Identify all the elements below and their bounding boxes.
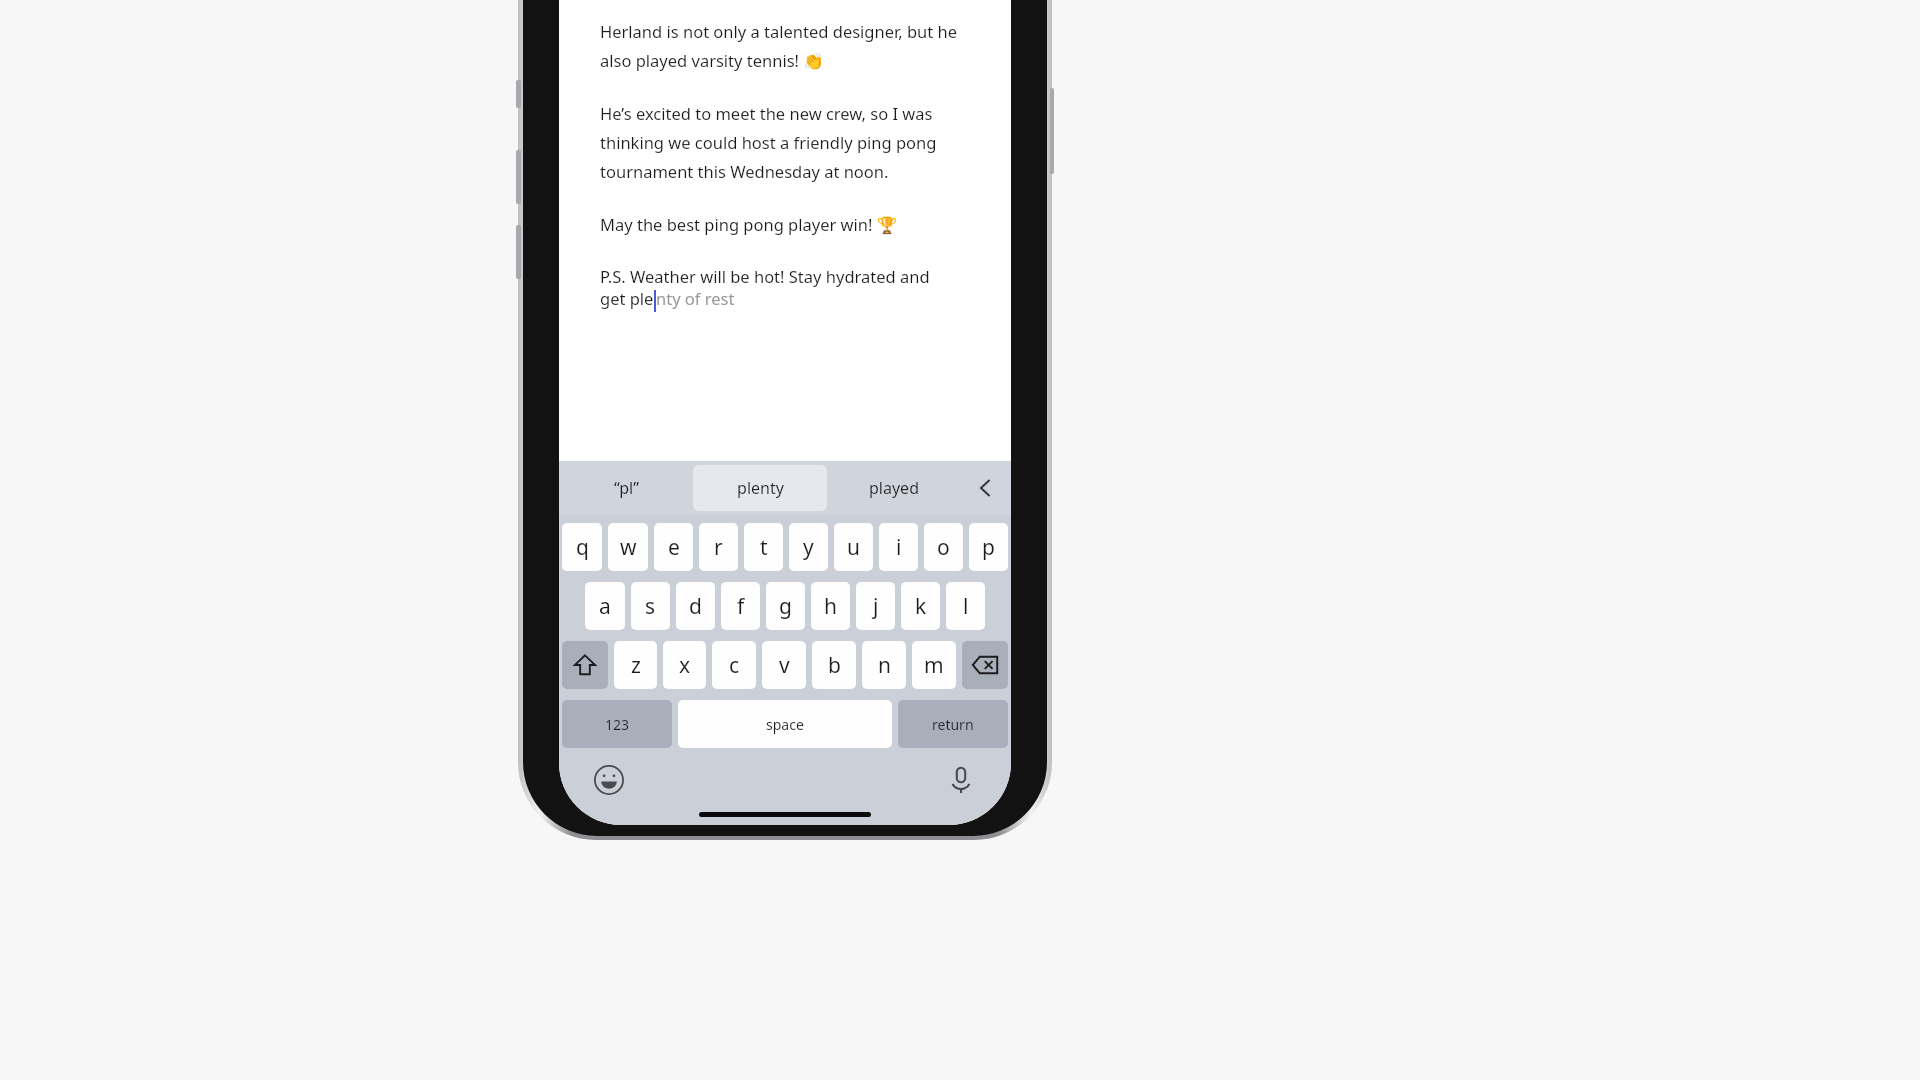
button[interactable]: played: [827, 461, 961, 515]
button[interactable]: i: [879, 523, 918, 571]
button[interactable]: z: [614, 641, 657, 689]
button[interactable]: Delete: [962, 641, 1008, 689]
staticText: v: [779, 651, 790, 680]
staticText: x: [679, 651, 691, 680]
staticText: q: [576, 533, 589, 562]
button[interactable]: o: [924, 523, 963, 571]
staticText: s: [645, 592, 656, 621]
staticText: w: [620, 533, 637, 562]
button[interactable]: r: [699, 523, 738, 571]
button[interactable]: x: [663, 641, 706, 689]
staticText: u: [847, 533, 860, 562]
staticText: l: [963, 592, 969, 621]
button[interactable]: s: [631, 582, 670, 630]
staticText: g: [779, 592, 792, 621]
staticText: nty of rest: [656, 287, 735, 309]
button[interactable]: Shift: [562, 641, 608, 689]
staticText: m: [924, 651, 944, 680]
staticText: 123: [605, 715, 630, 734]
button[interactable]: p: [969, 523, 1008, 571]
staticText: a: [599, 592, 611, 621]
staticText: He’s excited to meet the new crew, so I …: [600, 102, 937, 183]
button[interactable]: l: [946, 582, 985, 630]
button[interactable]: v: [762, 641, 806, 689]
button[interactable]: b: [812, 641, 856, 689]
button[interactable]: t: [744, 523, 783, 571]
button[interactable]: return: [898, 700, 1008, 748]
button[interactable]: n: [862, 641, 906, 689]
staticText: p: [982, 533, 995, 562]
staticText: get ple: [600, 287, 654, 309]
button[interactable]: plenty: [693, 465, 827, 511]
staticText: r: [714, 533, 723, 562]
staticText: h: [824, 592, 837, 621]
button[interactable]: Emoji keyboard: [587, 758, 631, 802]
staticText: played: [869, 477, 919, 499]
staticText: i: [896, 533, 902, 562]
button[interactable]: a: [585, 582, 625, 630]
other: Delete: [972, 652, 998, 678]
button[interactable]: j: [856, 582, 895, 630]
staticText: n: [878, 651, 891, 680]
staticText: e: [668, 533, 680, 562]
button[interactable]: 123: [562, 700, 672, 748]
staticText: Herland is not only a talented designer,…: [600, 20, 957, 72]
button[interactable]: e: [654, 523, 693, 571]
button[interactable]: Dictation: [939, 758, 983, 802]
staticText: “pl”: [614, 477, 639, 499]
staticText: k: [915, 592, 927, 621]
staticText: y: [803, 533, 814, 562]
button[interactable]: c: [712, 641, 756, 689]
staticText: c: [729, 651, 740, 680]
button[interactable]: Collapse suggestions: [961, 461, 1011, 515]
staticText: May the best ping pong player win! 🏆: [600, 213, 898, 235]
staticText: return: [932, 715, 974, 734]
staticText: t: [760, 533, 768, 562]
staticText: j: [873, 592, 879, 621]
staticText: o: [937, 533, 950, 562]
staticText: d: [689, 592, 702, 621]
button[interactable]: f: [721, 582, 760, 630]
other: Shift: [574, 654, 596, 676]
staticText: plenty: [737, 477, 784, 499]
staticText: f: [737, 592, 745, 621]
staticText: b: [828, 651, 841, 680]
button[interactable]: d: [676, 582, 715, 630]
button[interactable]: q: [562, 523, 602, 571]
button[interactable]: y: [789, 523, 828, 571]
button[interactable]: h: [811, 582, 850, 630]
staticText: P.S. Weather will be hot! Stay hydrated …: [600, 265, 930, 287]
button[interactable]: m: [912, 641, 956, 689]
button[interactable]: k: [901, 582, 940, 630]
button[interactable]: u: [834, 523, 873, 571]
staticText: z: [631, 651, 641, 680]
staticText: space: [766, 715, 804, 734]
button[interactable]: space: [678, 700, 892, 748]
button[interactable]: w: [608, 523, 648, 571]
button[interactable]: “pl”: [559, 461, 693, 515]
button[interactable]: g: [766, 582, 805, 630]
